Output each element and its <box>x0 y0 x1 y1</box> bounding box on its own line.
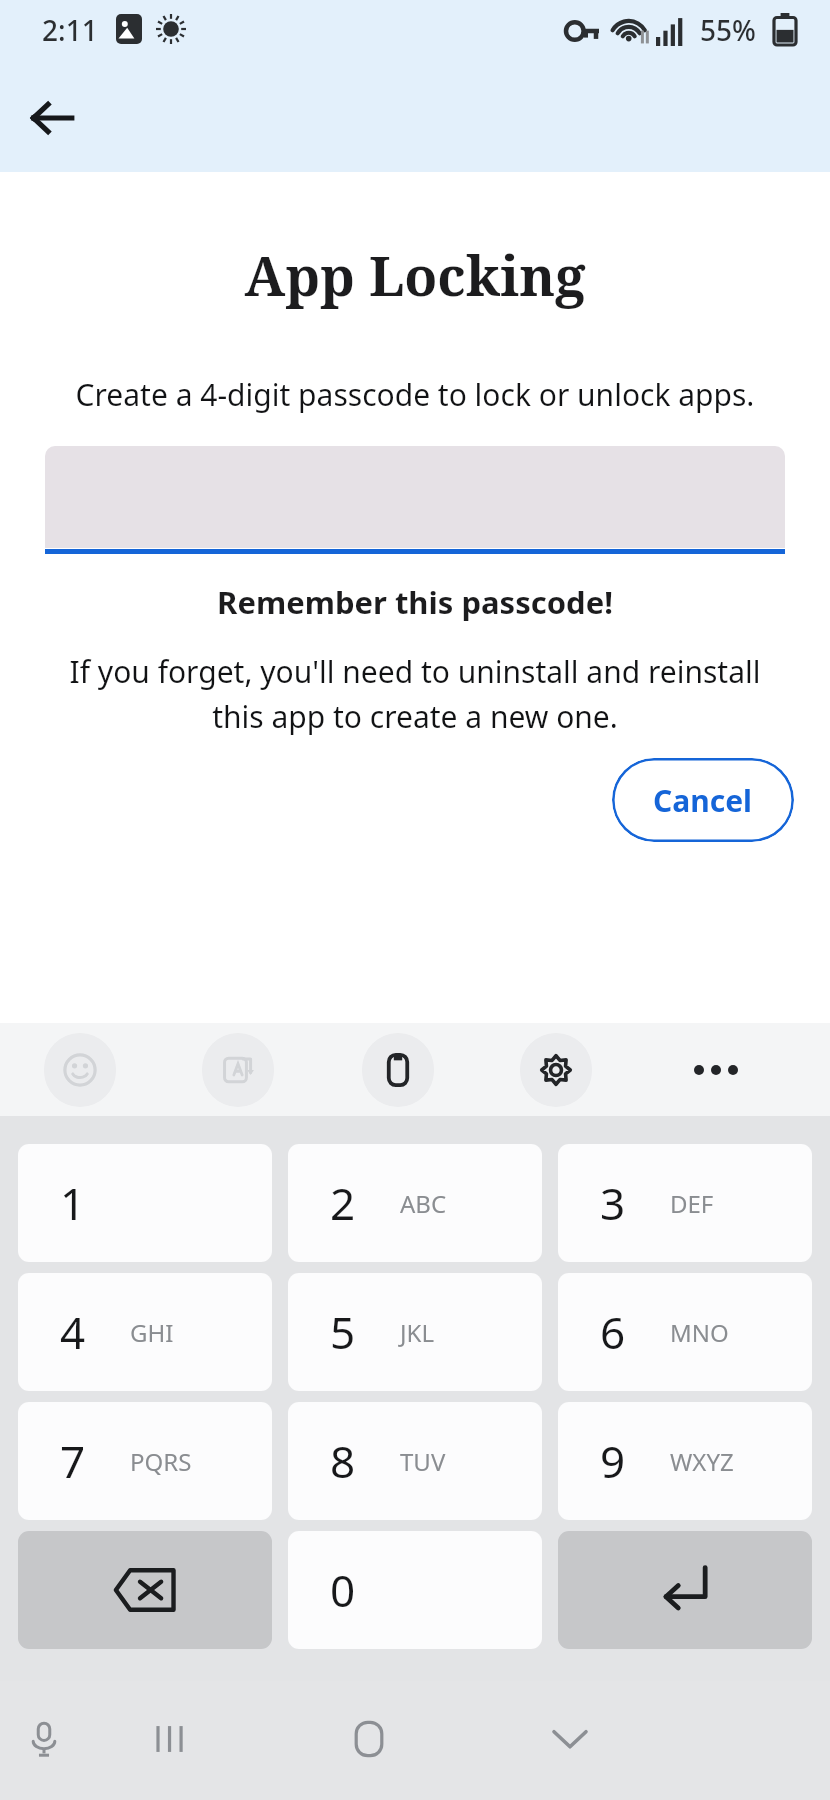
staticText: GHI <box>130 1316 174 1349</box>
button[interactable]: Recent apps <box>134 1703 206 1775</box>
staticText: Remember this passcode! <box>0 581 830 623</box>
button[interactable]: 5 <box>288 1273 542 1391</box>
staticText: 6 <box>600 1302 626 1362</box>
button[interactable]: Home <box>333 1703 405 1775</box>
button[interactable]: Clipboard <box>362 1033 434 1107</box>
button[interactable]: 4 <box>18 1273 272 1391</box>
button[interactable]: 6 <box>558 1273 812 1391</box>
staticText: WXYZ <box>670 1445 734 1478</box>
staticText: Cancel <box>653 780 753 821</box>
staticText: Create a 4-digit passcode to lock or unl… <box>54 374 776 415</box>
button[interactable]: 9 <box>558 1402 812 1520</box>
button[interactable]: 1 <box>18 1144 272 1262</box>
button[interactable]: 3 <box>558 1144 812 1262</box>
staticText: 4 <box>60 1302 86 1362</box>
button[interactable]: Emoji <box>44 1033 116 1107</box>
button[interactable]: Enter <box>558 1531 812 1649</box>
button[interactable]: Cancel <box>612 758 794 842</box>
button[interactable] <box>45 446 785 554</box>
staticText: If you forget, you'll need to uninstall … <box>44 651 786 736</box>
staticText: 0 <box>330 1560 356 1620</box>
staticText: 7 <box>60 1431 86 1491</box>
button[interactable]: 8 <box>288 1402 542 1520</box>
staticText: 8 <box>330 1431 356 1491</box>
staticText: 5 <box>330 1302 356 1362</box>
button[interactable]: More options <box>640 1023 792 1116</box>
button[interactable]: 7 <box>18 1402 272 1520</box>
button[interactable]: Hide keyboard <box>534 1703 606 1775</box>
staticText: 3 <box>600 1173 626 1233</box>
button[interactable]: Back <box>20 86 84 150</box>
staticText: App Locking <box>0 238 830 312</box>
button[interactable]: 0 <box>288 1531 542 1649</box>
staticText: 9 <box>600 1431 626 1491</box>
button[interactable]: 2 <box>288 1144 542 1262</box>
staticText: MNO <box>670 1316 729 1349</box>
staticText: ABC <box>400 1187 447 1220</box>
button[interactable]: Voice input <box>8 1703 80 1775</box>
staticText: JKL <box>400 1316 434 1349</box>
staticText: 55% <box>700 11 756 49</box>
staticText: PQRS <box>130 1445 192 1478</box>
staticText: TUV <box>400 1445 446 1478</box>
button[interactable]: Keyboard settings <box>520 1033 592 1107</box>
button[interactable]: Backspace <box>18 1531 272 1649</box>
button[interactable]: Translate <box>202 1033 274 1107</box>
staticText: 2 <box>330 1173 356 1233</box>
staticText: 1 <box>60 1173 86 1233</box>
staticText: DEF <box>670 1187 714 1220</box>
staticText: 2:11 <box>42 11 98 49</box>
